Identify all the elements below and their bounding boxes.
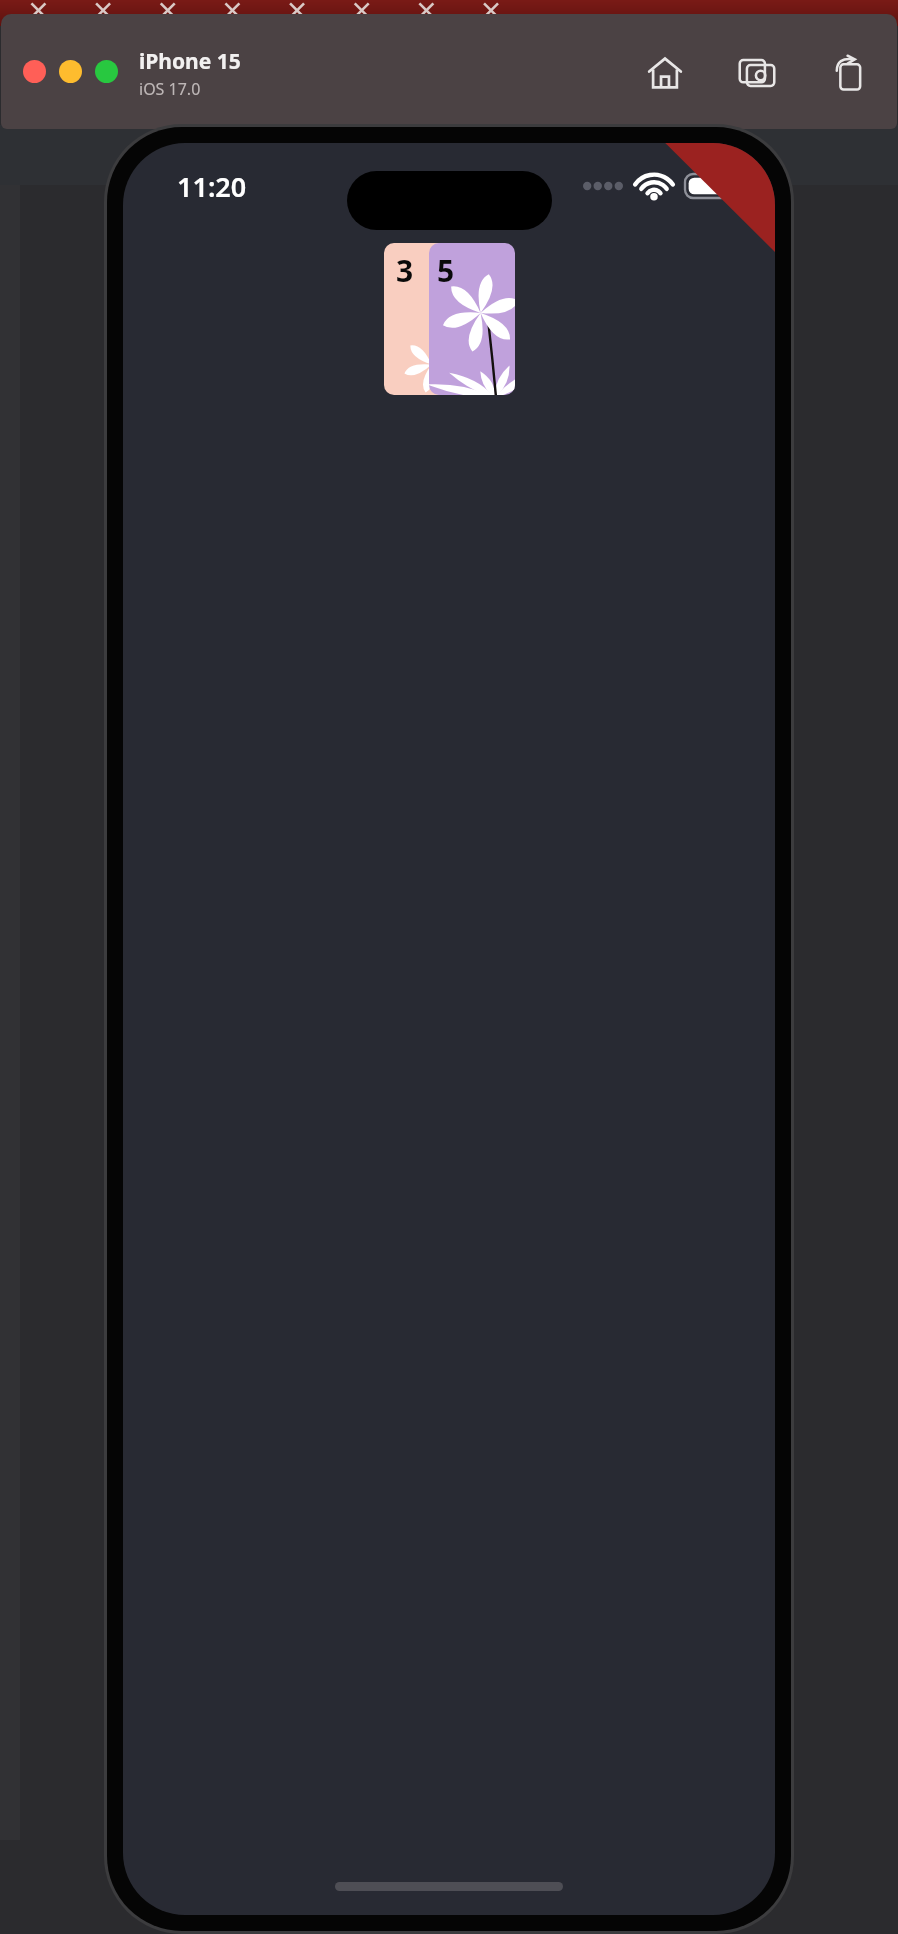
button[interactable]: Rotate [823, 47, 875, 99]
staticText: 3 [396, 250, 414, 291]
staticText: 11:20 [177, 168, 247, 205]
staticText: iOS 17.0 [139, 78, 201, 100]
staticText: iPhone 15 [139, 47, 241, 76]
button[interactable]: Zoom [95, 60, 118, 83]
button[interactable]: Close [23, 60, 46, 83]
button[interactable]: Screenshot [731, 47, 783, 99]
button[interactable]: Minimize [59, 60, 82, 83]
button[interactable]: 3 [384, 243, 515, 395]
button[interactable]: Home [639, 47, 691, 99]
staticText: 5 [437, 250, 455, 291]
